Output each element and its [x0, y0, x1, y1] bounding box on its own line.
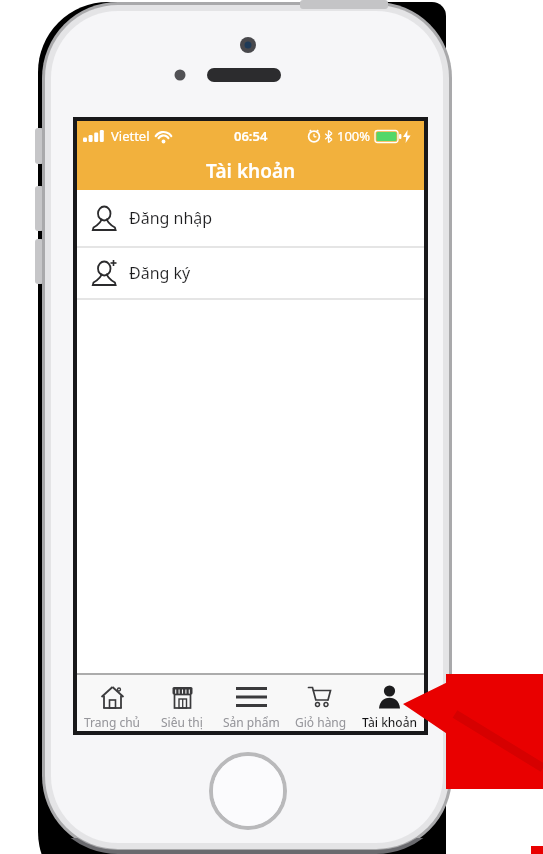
staticText: Viettel [111, 127, 150, 145]
button[interactable]: Siêu thị [147, 675, 217, 731]
staticText: Đăng ký [129, 262, 191, 284]
button[interactable]: Trang chủ [77, 675, 147, 731]
button[interactable]: Đăng ký [77, 248, 424, 298]
button[interactable]: Tài khoản [355, 675, 424, 731]
staticText: 06:54 [234, 127, 268, 145]
staticText: Đăng nhập [129, 207, 213, 229]
staticText: Tài khoản [362, 714, 418, 730]
button[interactable]: Đăng nhập [77, 190, 424, 246]
staticText: Siêu thị [161, 714, 203, 730]
staticText: Tài khoản [206, 158, 296, 184]
button[interactable]: Sản phẩm [217, 675, 286, 731]
staticText: Trang chủ [84, 714, 141, 730]
staticText: Giỏ hàng [295, 714, 347, 730]
staticText: Sản phẩm [223, 714, 280, 730]
staticText: 100% [337, 127, 371, 145]
button[interactable]: Giỏ hàng [286, 675, 355, 731]
